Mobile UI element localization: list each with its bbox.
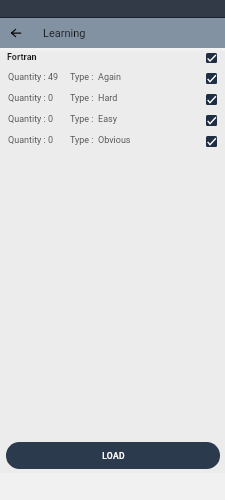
button[interactable]: Quantity : 0 [0, 131, 225, 152]
staticText: Type : Hard [70, 93, 118, 104]
staticText: Quantity : 49 [8, 72, 59, 83]
button[interactable]: Back [2, 19, 30, 47]
staticText: Type : Easy [70, 114, 117, 125]
button[interactable]: Toggle Fortran [206, 53, 217, 63]
button[interactable]: Toggle Easy [206, 115, 217, 126]
staticText: Quantity : 0 [8, 135, 54, 146]
button[interactable]: Quantity : 49 [0, 68, 225, 89]
button[interactable]: Toggle Obvious [206, 136, 217, 147]
staticText: LOAD [102, 451, 125, 461]
button[interactable]: Toggle Again [206, 73, 217, 84]
button[interactable]: Quantity : 0 [0, 110, 225, 131]
staticText: Quantity : 0 [8, 114, 54, 125]
staticText: Type : Obvious [70, 135, 131, 146]
staticText: Type : Again [70, 72, 121, 83]
button[interactable]: Toggle Hard [206, 94, 217, 105]
button[interactable]: LOAD [6, 442, 220, 469]
staticText: Learning [43, 27, 86, 40]
staticText: Fortran [7, 52, 37, 62]
button[interactable]: Quantity : 0 [0, 89, 225, 110]
button[interactable]: Fortran [0, 52, 225, 62]
staticText: Quantity : 0 [8, 93, 54, 104]
